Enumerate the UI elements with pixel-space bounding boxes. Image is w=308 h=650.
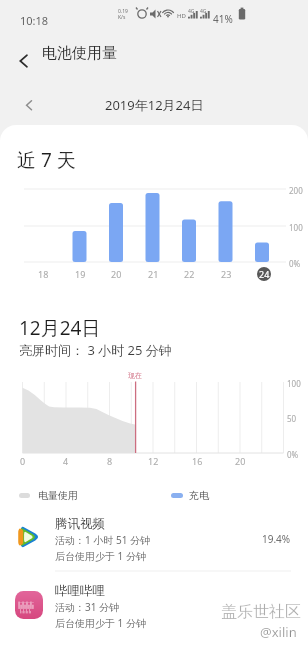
button[interactable]: 哔哩哔哩 [0,572,308,632]
staticText: 盖乐世社区 [221,602,301,622]
staticText: 后台使用少于 1 分钟 [55,549,146,563]
staticText: 10:18 [20,13,49,28]
staticText: @xilin [260,623,297,641]
staticText: 后台使用少于 1 分钟 [55,616,146,630]
staticText: 0 [20,455,26,467]
staticText: 4 [63,455,69,467]
staticText: 现在 [128,371,142,380]
staticText: 活动：1 小时 51 分钟 [55,533,150,547]
staticText: 41% [213,12,233,26]
staticText: 哔哩哔哩 [55,583,105,599]
staticText: 电量使用 [38,489,78,502]
staticText: 充电 [189,489,209,502]
staticText: 活动：31 分钟 [55,600,120,614]
staticText: 2019年12月24日 [105,96,204,114]
staticText: 23 [221,268,232,280]
staticText: 18 [38,268,49,280]
staticText: 16 [192,455,203,467]
staticText: 12月24日 [19,315,101,341]
staticText: 19.4% [262,532,291,546]
staticText: 腾讯视频 [55,516,105,532]
staticText: 0% [289,258,301,269]
staticText: 0% [287,449,299,460]
staticText: 0.19 K/s [118,8,128,21]
staticText: 22 [184,268,195,280]
staticText: 50 [287,413,297,424]
button[interactable]: Back [8,38,39,69]
staticText: 20 [111,268,122,280]
button[interactable]: Previous day [17,93,42,118]
staticText: 100 [289,222,303,233]
staticText: 4G [188,8,195,15]
staticText: 19 [75,268,86,280]
staticText: 近 7 天 [17,147,76,173]
staticText: 100 [287,378,301,389]
staticText: 24 [259,268,270,280]
staticText: 4G [200,8,207,15]
staticText: HD [177,12,186,20]
button[interactable]: 腾讯视频 [0,512,308,571]
staticText: 亮屏时间： 3 小时 25 分钟 [19,341,172,359]
staticText: 电池使用量 [42,44,117,63]
staticText: 8 [107,455,113,467]
staticText: 21 [148,268,159,280]
staticText: 200 [289,185,303,196]
staticText: 20 [235,455,246,467]
staticText: 12 [148,455,159,467]
